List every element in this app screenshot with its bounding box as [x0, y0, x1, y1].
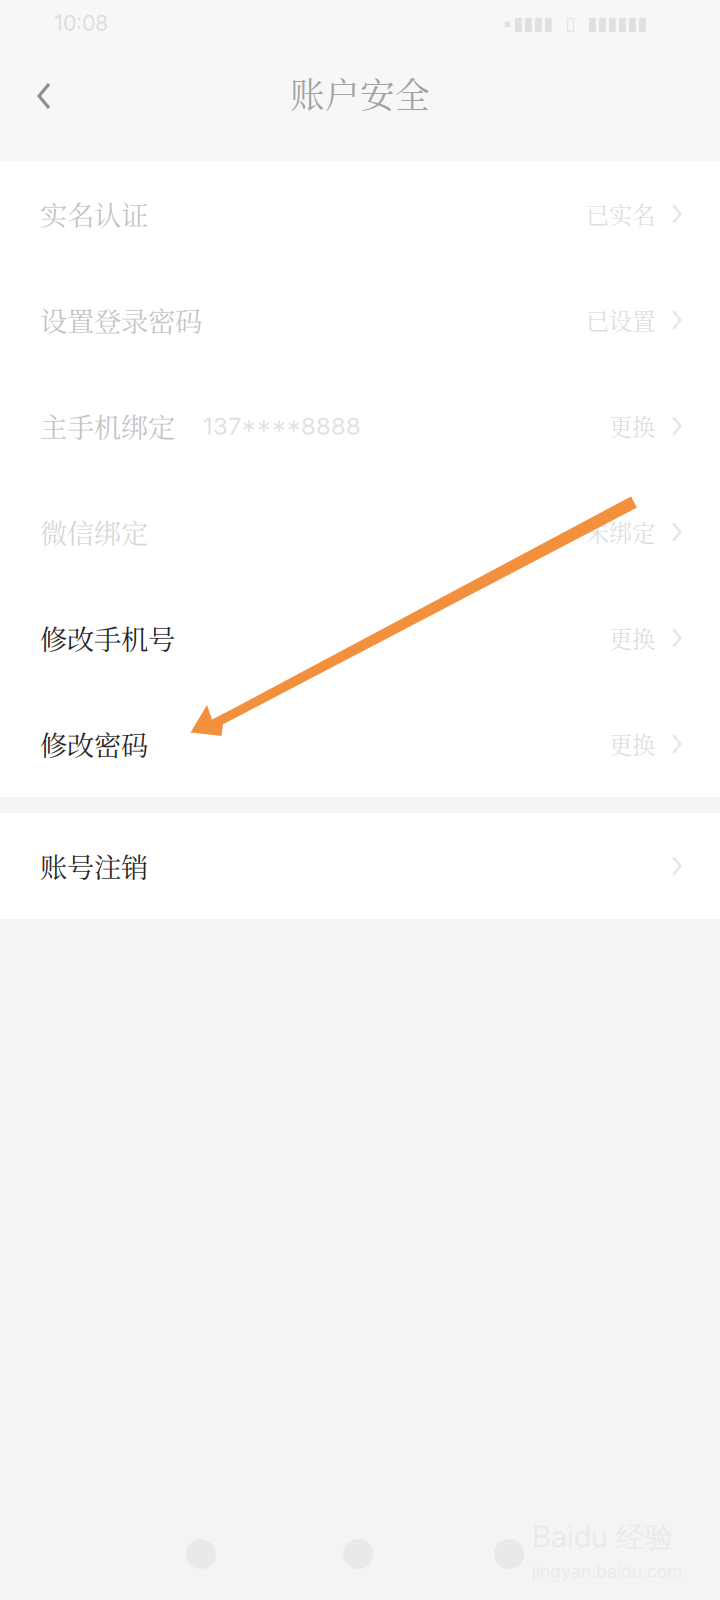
- staticText: 账户安全: [290, 68, 430, 118]
- staticText: 更换: [609, 727, 655, 761]
- staticText: 更换: [609, 409, 655, 443]
- staticText: 已实名: [586, 197, 655, 231]
- button[interactable]: 修改手机号: [0, 585, 720, 691]
- button[interactable]: Recents: [146, 1522, 256, 1586]
- staticText: 修改密码: [40, 724, 148, 764]
- button[interactable]: 主手机绑定: [0, 373, 720, 479]
- button[interactable]: 微信绑定: [0, 479, 720, 585]
- button[interactable]: Back: [454, 1522, 564, 1586]
- staticText: 设置登录密码: [40, 300, 202, 340]
- staticText: 实名认证: [40, 194, 148, 234]
- button[interactable]: 账号注销: [0, 813, 720, 919]
- staticText: 10:08: [54, 10, 108, 36]
- staticText: 账号注销: [40, 846, 148, 886]
- button[interactable]: 设置登录密码: [0, 267, 720, 373]
- staticText: ▪▮▮▮▮ ▯ ▮▮▮▮▮▮: [502, 12, 647, 34]
- staticText: 137****8888: [203, 411, 361, 440]
- staticText: 更换: [609, 621, 655, 655]
- staticText: 未绑定: [586, 515, 655, 549]
- button[interactable]: Home: [303, 1522, 413, 1586]
- staticText: jingyan.baidu.com: [532, 1561, 682, 1582]
- button[interactable]: 实名认证: [0, 161, 720, 267]
- staticText: Baidu 经验: [532, 1519, 674, 1556]
- staticText: 已设置: [586, 303, 655, 337]
- staticText: 微信绑定: [40, 512, 148, 552]
- button[interactable]: Back: [0, 62, 92, 124]
- button[interactable]: 修改密码: [0, 691, 720, 797]
- staticText: 修改手机号: [40, 618, 175, 658]
- staticText: 主手机绑定: [40, 406, 175, 446]
